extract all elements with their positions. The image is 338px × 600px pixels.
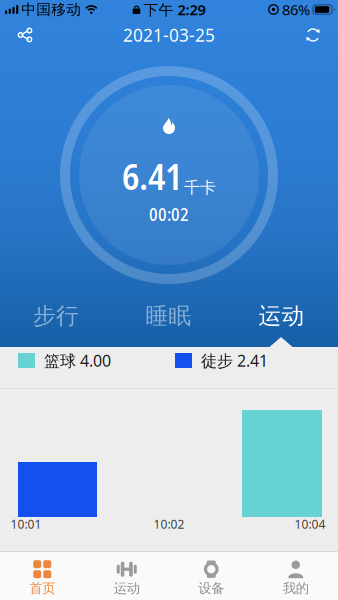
staticText: 运动 bbox=[258, 302, 304, 330]
staticText: 我的 bbox=[283, 580, 309, 597]
staticText: 10:01 bbox=[10, 516, 41, 532]
button[interactable]: 运动 bbox=[225, 296, 338, 336]
staticText: 首页 bbox=[29, 580, 55, 597]
staticText: 00:02 bbox=[149, 202, 189, 226]
staticText: 篮球 4.00 bbox=[44, 350, 111, 371]
staticText: 步行 bbox=[33, 302, 79, 330]
button[interactable]: 运动 bbox=[84, 552, 169, 600]
button[interactable]: Refresh bbox=[293, 19, 333, 51]
button[interactable]: Share bbox=[5, 19, 45, 51]
staticText: 徒步 2.41 bbox=[201, 350, 268, 371]
staticText: 运动 bbox=[114, 580, 140, 597]
staticText: 2021-03-25 bbox=[123, 23, 215, 46]
staticText: 6.41 bbox=[122, 151, 182, 200]
staticText: 睡眠 bbox=[145, 302, 191, 330]
button[interactable]: 步行 bbox=[0, 296, 112, 336]
staticText: 下午 2:29 bbox=[143, 0, 205, 19]
staticText: 中国移动 bbox=[21, 0, 81, 18]
staticText: 10:04 bbox=[294, 516, 325, 532]
staticText: 10:02 bbox=[153, 516, 184, 532]
button[interactable]: 首页 bbox=[0, 552, 84, 600]
button[interactable]: 睡眠 bbox=[112, 296, 225, 336]
staticText: 千卡 bbox=[184, 178, 216, 198]
button[interactable]: 我的 bbox=[253, 552, 338, 600]
staticText: 设备 bbox=[198, 580, 224, 597]
button[interactable]: 设备 bbox=[169, 552, 253, 600]
staticText: 86% bbox=[282, 0, 310, 19]
